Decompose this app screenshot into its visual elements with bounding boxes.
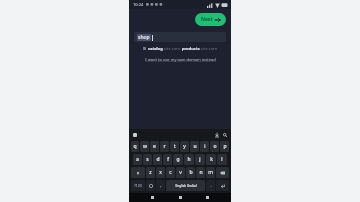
- button[interactable]: h: [184, 154, 194, 165]
- staticText: s: [146, 156, 149, 163]
- staticText: ,: [160, 182, 162, 189]
- button[interactable]: z: [146, 167, 155, 178]
- button[interactable]: e: [150, 141, 159, 152]
- staticText: ?123: [134, 183, 142, 188]
- staticText: w: [143, 143, 147, 150]
- staticText: l: [221, 156, 223, 163]
- button[interactable]: b: [186, 167, 195, 178]
- staticText: e: [153, 143, 156, 150]
- button[interactable]: m: [206, 167, 215, 178]
- staticText: d: [156, 156, 160, 163]
- staticText: c: [169, 169, 172, 176]
- button[interactable]: y: [180, 141, 189, 152]
- staticText: a: [136, 156, 139, 163]
- staticText: f: [167, 156, 169, 163]
- button[interactable]: o: [210, 141, 219, 152]
- button[interactable]: u: [190, 141, 199, 152]
- button[interactable]: j: [195, 154, 205, 165]
- button[interactable]: n: [196, 167, 205, 178]
- staticText: u: [193, 143, 197, 150]
- button[interactable]: i: [200, 141, 209, 152]
- staticText: English (India): [175, 184, 197, 188]
- staticText: k: [210, 156, 213, 163]
- button[interactable]: Backspace: [216, 167, 229, 178]
- button[interactable]: Shift: [131, 167, 145, 178]
- staticText: .site.com: [200, 46, 217, 51]
- button[interactable]: Search: [222, 132, 228, 138]
- staticText: x: [159, 169, 162, 176]
- staticText: o: [213, 143, 217, 150]
- button[interactable]: p: [220, 141, 229, 152]
- staticText: shop: [138, 34, 150, 41]
- staticText: n: [199, 169, 203, 176]
- staticText: Next: [201, 16, 213, 23]
- button[interactable]: l: [217, 154, 227, 165]
- button[interactable]: f: [163, 154, 172, 165]
- staticText: z: [149, 169, 152, 176]
- staticText: g: [176, 156, 180, 163]
- button[interactable]: g: [173, 154, 183, 165]
- button[interactable]: Next: [195, 13, 226, 26]
- button[interactable]: catalog: [134, 46, 226, 51]
- staticText: I want to use my own domain instead: [145, 57, 216, 62]
- button[interactable]: Recents: [203, 193, 212, 202]
- button[interactable]: r: [160, 141, 169, 152]
- button[interactable]: Home: [176, 193, 185, 202]
- button[interactable]: English (India): [166, 180, 205, 191]
- staticText: p: [223, 143, 227, 150]
- staticText: v: [179, 169, 182, 176]
- staticText: m: [208, 169, 213, 176]
- staticText: r: [163, 143, 166, 150]
- button[interactable]: Clipboard: [132, 132, 137, 137]
- staticText: .site.com: [163, 46, 180, 51]
- button[interactable]: x: [156, 167, 165, 178]
- button[interactable]: s: [143, 154, 152, 165]
- staticText: 10:24: [133, 2, 144, 7]
- staticText: t: [174, 143, 176, 150]
- button[interactable]: Enter: [216, 180, 229, 191]
- button[interactable]: Back: [148, 193, 157, 202]
- staticText: catalog: [148, 46, 163, 51]
- staticText: products: [182, 46, 200, 51]
- button[interactable]: .: [206, 180, 215, 191]
- button[interactable]: I want to use my own domain instead: [143, 56, 218, 63]
- button[interactable]: q: [131, 141, 139, 152]
- button[interactable]: Emoji: [146, 180, 155, 191]
- staticText: j: [199, 156, 201, 163]
- button[interactable]: v: [176, 167, 185, 178]
- staticText: i: [204, 143, 206, 150]
- button[interactable]: Download: [214, 132, 220, 138]
- staticText: q: [133, 143, 137, 150]
- button[interactable]: k: [206, 154, 216, 165]
- button[interactable]: ,: [156, 180, 165, 191]
- staticText: .: [210, 182, 212, 189]
- staticText: b: [189, 169, 193, 176]
- staticText: h: [187, 156, 191, 163]
- button[interactable]: shop: [134, 32, 226, 42]
- button[interactable]: ?123: [131, 180, 145, 191]
- button[interactable]: c: [166, 167, 175, 178]
- button[interactable]: t: [170, 141, 179, 152]
- button[interactable]: d: [153, 154, 162, 165]
- staticText: y: [183, 143, 186, 150]
- button[interactable]: w: [140, 141, 149, 152]
- button[interactable]: a: [133, 154, 142, 165]
